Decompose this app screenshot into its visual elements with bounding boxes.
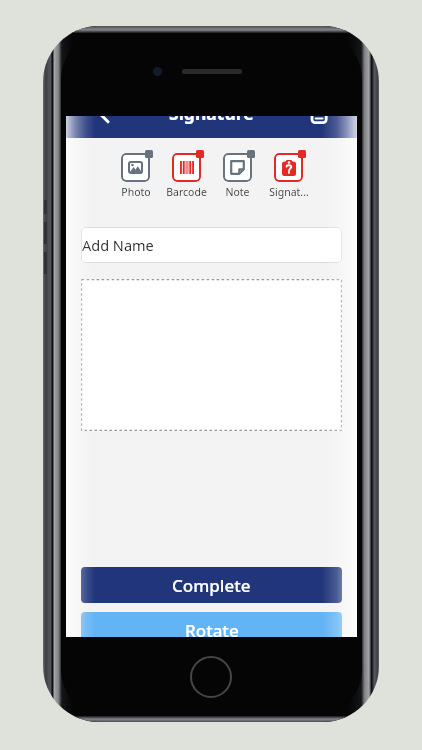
staticText: Add Name [82, 235, 154, 255]
staticText: Signature [169, 116, 254, 125]
staticText: Photo [121, 185, 151, 199]
button[interactable]: Signature pad [81, 279, 342, 431]
button[interactable]: Rotate [81, 612, 342, 637]
staticText: Complete [172, 574, 251, 597]
button[interactable]: Note [212, 150, 263, 199]
button[interactable]: Complete [81, 567, 342, 603]
button[interactable]: Save [290, 116, 330, 138]
button[interactable]: Back [98, 116, 138, 138]
staticText: Note [225, 185, 250, 199]
staticText: Rotate [185, 619, 239, 637]
staticText: Barcode [166, 185, 207, 199]
button[interactable]: Photo [110, 150, 161, 199]
button[interactable]: Add Name [81, 227, 342, 263]
button[interactable]: Barcode [161, 150, 212, 199]
button[interactable]: Signat... [263, 150, 314, 199]
staticText: Signat... [269, 185, 309, 199]
